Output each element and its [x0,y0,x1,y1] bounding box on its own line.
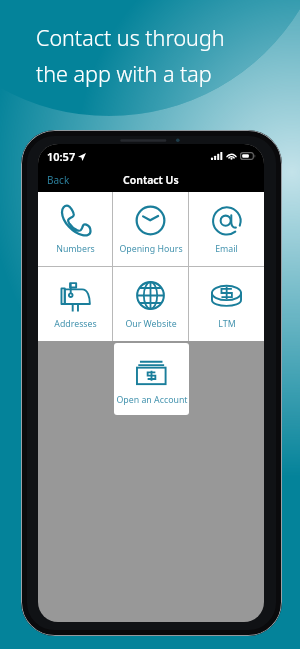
staticText: Open an Account [116,394,188,406]
staticText: Addresses [54,318,97,330]
staticText: Our Website [125,318,177,330]
button[interactable]: Open an Account [114,343,189,415]
button[interactable]: LTM [189,267,264,341]
button[interactable]: Numbers [38,192,112,266]
staticText: Contact us through the app with a tap [36,23,225,89]
staticText: 10:57 [47,149,76,164]
staticText: LTM [218,318,236,330]
staticText: Numbers [56,243,95,255]
staticText: Email [215,243,238,255]
button[interactable]: Our Website [113,267,188,341]
staticText: Opening Hours [119,243,183,255]
button[interactable]: Addresses [38,267,112,341]
button[interactable]: Email [189,192,264,266]
staticText: Contact Us [123,173,179,187]
staticText: Back [47,173,70,187]
button[interactable]: Opening Hours [113,192,188,266]
button[interactable]: Back [38,169,76,191]
